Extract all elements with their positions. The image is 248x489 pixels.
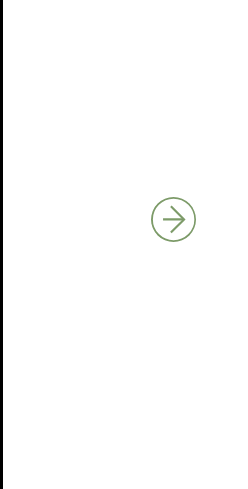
- button[interactable]: Next: [151, 197, 196, 242]
